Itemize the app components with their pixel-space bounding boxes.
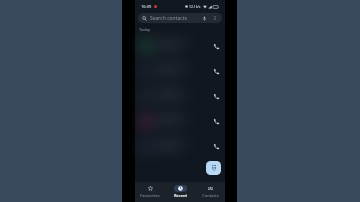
button[interactable]: Call xyxy=(210,40,222,52)
staticText: 12.1k/s xyxy=(189,4,201,9)
staticText: Search contacts xyxy=(150,15,187,22)
button[interactable]: Call xyxy=(210,115,222,127)
other: Voice search xyxy=(202,16,207,21)
button[interactable]: Call xyxy=(210,140,222,152)
button[interactable]: Favourites xyxy=(135,182,165,202)
button[interactable] xyxy=(135,133,225,158)
button[interactable]: Search contacts xyxy=(138,13,222,23)
other: More options xyxy=(213,16,217,20)
button[interactable]: Call xyxy=(210,90,222,102)
staticText: Recent xyxy=(174,193,187,198)
staticText: Favourites xyxy=(140,193,160,198)
staticText: Today xyxy=(139,27,151,32)
button[interactable]: Contacts xyxy=(195,182,225,202)
button[interactable]: Dialpad xyxy=(206,161,221,175)
button[interactable]: Call xyxy=(210,65,222,77)
button[interactable] xyxy=(135,58,225,83)
button[interactable] xyxy=(135,83,225,108)
button[interactable] xyxy=(135,33,225,58)
staticText: 16:09 xyxy=(141,4,152,9)
button[interactable] xyxy=(135,108,225,133)
staticText: Contacts xyxy=(202,193,219,198)
button[interactable]: Recent xyxy=(165,182,195,202)
